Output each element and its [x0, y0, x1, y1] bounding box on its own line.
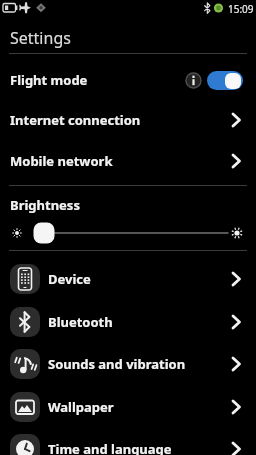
staticText: Wallpaper — [48, 398, 114, 416]
staticText: Settings — [10, 27, 71, 49]
staticText: 15:09 — [228, 2, 254, 16]
staticText: Sounds and vibration — [48, 355, 186, 373]
staticText: Bluetooth — [48, 313, 113, 331]
button[interactable] — [207, 71, 243, 90]
button[interactable]: Internet connection — [0, 100, 256, 140]
button[interactable]: Device — [0, 258, 256, 300]
button[interactable]: Sounds and vibration — [0, 343, 256, 385]
button[interactable]: Flight mode — [0, 60, 256, 100]
staticText: Mobile network — [10, 152, 113, 170]
button[interactable]: Time and language — [0, 428, 256, 455]
button[interactable]: Bluetooth — [0, 301, 256, 343]
staticText: Brightness — [10, 196, 80, 214]
staticText: Internet connection — [10, 111, 141, 129]
staticText: Flight mode — [10, 71, 88, 89]
button[interactable]: Wallpaper — [0, 386, 256, 428]
staticText: Device — [48, 270, 91, 288]
button[interactable]: Mobile network — [0, 141, 256, 181]
staticText: Time and language — [48, 440, 172, 455]
